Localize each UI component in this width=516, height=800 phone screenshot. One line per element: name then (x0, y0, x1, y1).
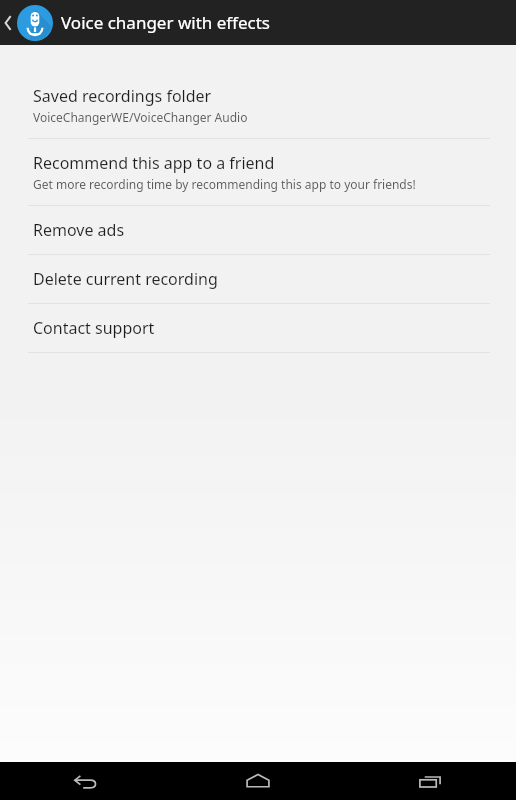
button[interactable]: Saved recordings folder (0, 72, 516, 138)
staticText: Saved recordings folder (33, 85, 212, 107)
staticText: VoiceChangerWE/VoiceChanger Audio (33, 109, 248, 125)
button[interactable]: Back (0, 762, 172, 800)
button[interactable]: Recommend this app to a friend (0, 139, 516, 205)
button[interactable]: Contact support (0, 304, 516, 352)
button[interactable]: Home (172, 762, 344, 800)
staticText: Voice changer with effects (61, 11, 271, 34)
button[interactable]: Delete current recording (0, 255, 516, 303)
button[interactable]: Remove ads (0, 206, 516, 254)
staticText: Delete current recording (33, 268, 218, 290)
staticText: Recommend this app to a friend (33, 152, 275, 174)
button[interactable]: Recent apps (344, 762, 516, 800)
staticText: Contact support (33, 317, 155, 339)
staticText: Remove ads (33, 219, 125, 241)
staticText: Get more recording time by recommending … (33, 176, 416, 192)
button[interactable]: Back (0, 0, 57, 45)
